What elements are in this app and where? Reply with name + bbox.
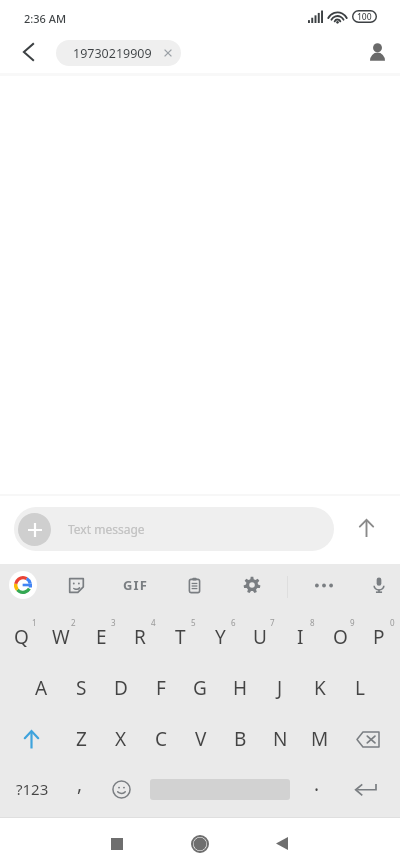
- staticText: 19730219909: [73, 45, 152, 62]
- button[interactable]: J: [260, 663, 300, 713]
- staticText: X: [115, 726, 127, 752]
- button[interactable]: Voice input: [358, 564, 400, 606]
- button[interactable]: 19730219909: [56, 40, 181, 66]
- staticText: 8: [310, 617, 315, 628]
- staticText: 4: [151, 617, 156, 628]
- staticText: U: [253, 624, 267, 650]
- button[interactable]: Shift: [1, 714, 61, 764]
- staticText: P: [373, 624, 385, 650]
- staticText: T: [175, 624, 186, 650]
- button[interactable]: T: [160, 612, 200, 662]
- staticText: 100: [357, 11, 372, 23]
- staticText: ,: [77, 771, 83, 797]
- staticText: J: [277, 675, 283, 701]
- button[interactable]: W: [41, 612, 81, 662]
- button[interactable]: Text message: [14, 507, 334, 551]
- button[interactable]: Clipboard: [173, 564, 215, 606]
- button[interactable]: Emoji: [102, 765, 140, 813]
- button[interactable]: L: [340, 663, 380, 713]
- button[interactable]: N: [260, 714, 300, 764]
- button[interactable]: U: [240, 612, 280, 662]
- button[interactable]: R: [120, 612, 160, 662]
- button[interactable]: D: [101, 663, 141, 713]
- staticText: B: [234, 726, 247, 752]
- button[interactable]: Contact details: [355, 30, 399, 74]
- button[interactable]: E: [81, 612, 121, 662]
- staticText: F: [156, 675, 166, 701]
- button[interactable]: Back: [252, 818, 312, 863]
- staticText: G: [193, 675, 207, 701]
- button[interactable]: O: [320, 612, 360, 662]
- button[interactable]: Backspace: [338, 714, 398, 764]
- staticText: Y: [215, 624, 226, 650]
- button[interactable]: Stickers: [55, 564, 97, 606]
- button[interactable]: F: [141, 663, 181, 713]
- button[interactable]: Q: [1, 612, 41, 662]
- staticText: V: [195, 726, 207, 752]
- staticText: 2:36 AM: [24, 11, 67, 26]
- staticText: O: [333, 624, 348, 650]
- staticText: H: [233, 675, 248, 701]
- staticText: 5: [191, 617, 196, 628]
- staticText: I: [297, 624, 304, 650]
- staticText: 6: [231, 617, 236, 628]
- staticText: C: [155, 726, 168, 752]
- staticText: N: [273, 726, 288, 752]
- button[interactable]: M: [300, 714, 340, 764]
- staticText: 2: [71, 617, 76, 628]
- button[interactable]: Send: [344, 506, 388, 550]
- staticText: K: [314, 675, 326, 701]
- staticText: 3: [111, 617, 116, 628]
- button[interactable]: Space: [140, 765, 300, 813]
- staticText: .: [314, 771, 320, 797]
- staticText: E: [96, 624, 107, 650]
- button[interactable]: GIF: [115, 564, 157, 606]
- button[interactable]: Home: [170, 818, 230, 863]
- button[interactable]: Settings: [231, 564, 273, 606]
- button[interactable]: P: [359, 612, 399, 662]
- staticText: ?123: [16, 779, 49, 799]
- button[interactable]: K: [300, 663, 340, 713]
- button[interactable]: G: [180, 663, 220, 713]
- staticText: S: [76, 675, 87, 701]
- staticText: GIF: [123, 576, 149, 594]
- staticText: W: [52, 624, 70, 650]
- button[interactable]: Recent apps: [87, 818, 147, 863]
- button[interactable]: ,: [61, 765, 99, 813]
- staticText: 9: [350, 617, 355, 628]
- button[interactable]: S: [61, 663, 101, 713]
- staticText: D: [114, 675, 128, 701]
- button[interactable]: More options: [303, 564, 345, 606]
- staticText: Q: [14, 624, 29, 650]
- staticText: 0: [390, 617, 395, 628]
- button[interactable]: Back: [6, 30, 50, 74]
- button[interactable]: Y: [200, 612, 240, 662]
- staticText: M: [311, 726, 329, 752]
- button[interactable]: .: [298, 765, 336, 813]
- button[interactable]: H: [220, 663, 260, 713]
- button[interactable]: Symbols: [2, 765, 62, 813]
- staticText: Text message: [68, 521, 145, 537]
- button[interactable]: A: [21, 663, 61, 713]
- staticText: L: [355, 675, 365, 701]
- staticText: R: [134, 624, 146, 650]
- button[interactable]: C: [141, 714, 181, 764]
- staticText: Z: [76, 726, 87, 752]
- button[interactable]: V: [181, 714, 221, 764]
- staticText: 1: [32, 617, 37, 628]
- button[interactable]: B: [220, 714, 260, 764]
- button[interactable]: X: [101, 714, 141, 764]
- button[interactable]: Z: [61, 714, 101, 764]
- staticText: 7: [270, 617, 275, 628]
- button[interactable]: Google: [2, 564, 44, 606]
- staticText: A: [35, 675, 48, 701]
- button[interactable]: Enter: [336, 765, 396, 813]
- button[interactable]: I: [280, 612, 320, 662]
